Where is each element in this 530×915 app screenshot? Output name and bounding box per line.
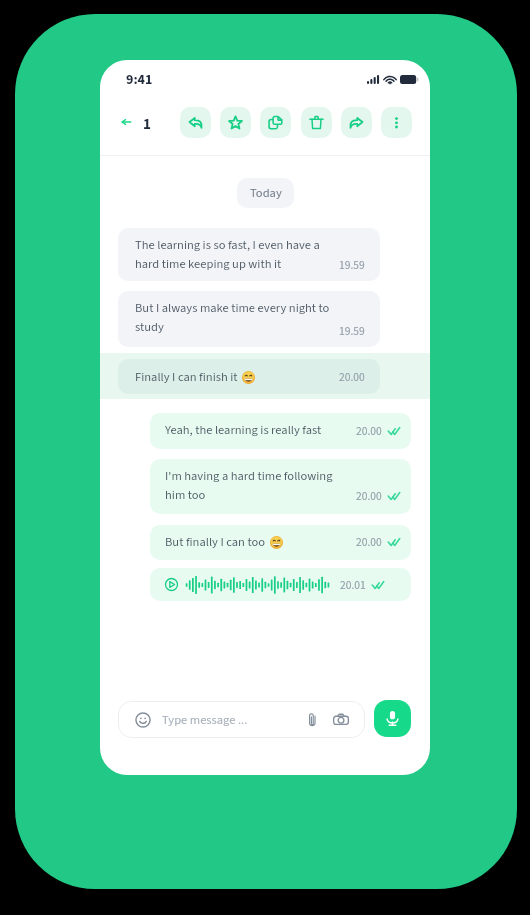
- staticText: Type message ...: [162, 711, 248, 729]
- button[interactable]: Finally I can finish it: [118, 359, 380, 394]
- button[interactable]: Record voice message: [374, 700, 411, 737]
- staticText: 20.00: [356, 423, 382, 439]
- staticText: But finally I can too: [165, 533, 266, 551]
- button[interactable]: Today: [237, 178, 294, 208]
- button[interactable]: Delete: [301, 107, 332, 138]
- staticText: 20.00: [356, 534, 382, 550]
- staticText: The learning is so fast, I even have a h…: [135, 236, 320, 273]
- button[interactable]: More options: [381, 107, 412, 138]
- button[interactable]: The learning is so fast, I even have a h…: [118, 228, 380, 281]
- staticText: Finally I can finish it: [135, 368, 238, 386]
- staticText: 19.59: [339, 257, 365, 273]
- button[interactable]: But I always make time every night to st…: [118, 291, 380, 347]
- staticText: Yeah, the learning is really fast: [165, 421, 322, 439]
- staticText: 20.01: [340, 577, 366, 593]
- button[interactable]: Type message ...: [118, 701, 365, 738]
- staticText: 1: [143, 114, 151, 135]
- staticText: 9:41: [126, 70, 153, 90]
- button[interactable]: Yeah, the learning is really fast: [150, 413, 411, 449]
- button[interactable]: Reply: [180, 107, 211, 138]
- button[interactable]: But finally I can too: [150, 525, 411, 560]
- button[interactable]: Back: [116, 112, 136, 132]
- button[interactable]: Star: [220, 107, 251, 138]
- button[interactable]: I'm having a hard time following him too: [150, 459, 411, 514]
- button[interactable]: Voice message: [150, 568, 411, 601]
- staticText: 20.00: [339, 369, 365, 385]
- button[interactable]: Forward: [341, 107, 372, 138]
- staticText: Today: [250, 184, 282, 202]
- button[interactable]: Copy: [260, 107, 291, 138]
- staticText: 20.00: [356, 488, 382, 504]
- staticText: But I always make time every night to st…: [135, 299, 330, 336]
- staticText: I'm having a hard time following him too: [165, 467, 333, 504]
- staticText: 19.59: [339, 323, 365, 339]
